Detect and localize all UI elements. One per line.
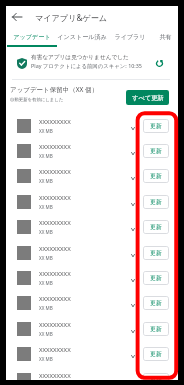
staticText: アップデート保留中（XX 個）: [10, 85, 99, 94]
staticText: XXXXXXXXX: [39, 295, 71, 303]
staticText: 更新: [150, 350, 162, 358]
staticText: XXXXXXXXX: [39, 321, 71, 329]
staticText: XX MB: [39, 356, 53, 362]
staticText: 更新: [150, 299, 162, 307]
staticText: XXXXXXXXX: [39, 346, 71, 354]
staticText: XX MB: [39, 153, 53, 159]
staticText: インストール済み: [57, 33, 107, 41]
staticText: XX MB: [39, 229, 53, 235]
button[interactable]: インストール済み: [51, 28, 112, 45]
staticText: 自動更新を有効にしました: [10, 97, 64, 103]
button[interactable]: Expand: [131, 330, 135, 333]
staticText: XX MB: [39, 331, 53, 337]
button[interactable]: XXXXXXXXX: [6, 189, 178, 214]
button[interactable]: XXXXXXXXX: [6, 240, 178, 265]
staticText: XX MB: [39, 280, 53, 286]
staticText: XXXXXXXXX: [39, 219, 71, 227]
button[interactable]: XXXXXXXXX: [6, 163, 178, 188]
staticText: 有害なアプリは見つかりませんでした: [31, 54, 129, 61]
button[interactable]: XXXXXXXXX: [6, 113, 178, 138]
staticText: XXXXXXXXX: [39, 194, 71, 202]
staticText: XX MB: [39, 305, 53, 311]
staticText: XXXXXXXXX: [39, 245, 71, 253]
button[interactable]: 共有: [152, 28, 178, 45]
button[interactable]: Expand: [131, 177, 135, 180]
button[interactable]: XXXXXXXXX: [6, 341, 178, 366]
button[interactable]: XXXXXXXXX: [6, 265, 178, 290]
staticText: 更新: [150, 122, 162, 130]
staticText: 更新: [150, 198, 162, 206]
button[interactable]: 更新: [143, 144, 169, 158]
staticText: すべて更新: [132, 94, 164, 102]
staticText: XX MB: [39, 204, 53, 210]
button[interactable]: XXXXXXXXX: [6, 367, 178, 380]
button[interactable]: Expand: [131, 203, 135, 206]
staticText: 更新: [150, 172, 162, 180]
staticText: XXXXXXXXX: [39, 168, 71, 176]
staticText: 更新: [150, 223, 162, 231]
staticText: XXXXXXXXX: [39, 372, 71, 380]
button[interactable]: Expand: [131, 279, 135, 282]
button[interactable]: 更新: [143, 169, 169, 183]
staticText: XXXXXXXXX: [39, 143, 71, 151]
button[interactable]: アップデート: [7, 28, 57, 45]
button[interactable]: 更新: [143, 322, 169, 336]
button[interactable]: Expand: [131, 127, 135, 130]
button[interactable]: XXXXXXXXX: [6, 214, 178, 239]
button[interactable]: 更新: [143, 373, 169, 380]
button[interactable]: ライブラリ: [110, 28, 150, 45]
button[interactable]: Refresh: [151, 55, 167, 71]
button[interactable]: Expand: [131, 304, 135, 307]
button[interactable]: Back: [6, 6, 28, 28]
staticText: マイアプリ&ゲーム: [35, 12, 108, 23]
staticText: XX MB: [39, 128, 53, 134]
staticText: 共有: [159, 33, 172, 41]
button[interactable]: Expand: [131, 254, 135, 257]
staticText: XX MB: [39, 255, 53, 261]
button[interactable]: 有害なアプリは見つかりませんでした: [6, 48, 178, 78]
button[interactable]: 更新: [143, 220, 169, 234]
button[interactable]: XXXXXXXXX: [6, 290, 178, 315]
button[interactable]: Expand: [131, 152, 135, 155]
staticText: XX MB: [39, 178, 53, 184]
staticText: 更新: [150, 274, 162, 282]
staticText: 更新: [150, 249, 162, 257]
staticText: アップデート: [13, 33, 51, 41]
button[interactable]: すべて更新: [126, 90, 169, 105]
button[interactable]: XXXXXXXXX: [6, 316, 178, 341]
button[interactable]: 更新: [143, 119, 169, 133]
staticText: 更新: [150, 376, 162, 380]
staticText: 更新: [150, 325, 162, 333]
button[interactable]: Expand: [131, 228, 135, 231]
button[interactable]: Expand: [131, 355, 135, 358]
staticText: XXXXXXXXX: [39, 118, 71, 126]
staticText: Play プロテクトによる前回のスキャン: 10:35: [31, 62, 142, 69]
button[interactable]: 更新: [143, 271, 169, 285]
button[interactable]: XXXXXXXXX: [6, 138, 178, 163]
staticText: ライブラリ: [114, 33, 146, 41]
button[interactable]: 更新: [143, 296, 169, 310]
button[interactable]: 更新: [143, 347, 169, 361]
button[interactable]: 更新: [143, 195, 169, 209]
staticText: XXXXXXXXX: [39, 270, 71, 278]
button[interactable]: 更新: [143, 246, 169, 260]
staticText: 更新: [150, 147, 162, 155]
